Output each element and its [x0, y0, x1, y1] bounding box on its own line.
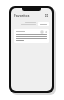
button[interactable]: Compartir	[44, 30, 47, 33]
staticText: Favoritos	[14, 13, 30, 18]
button[interactable]	[38, 22, 49, 26]
button[interactable]: Marcador	[40, 30, 43, 33]
button[interactable]: Cambiar vista	[44, 13, 49, 18]
button[interactable]: Favoritos	[14, 13, 30, 18]
